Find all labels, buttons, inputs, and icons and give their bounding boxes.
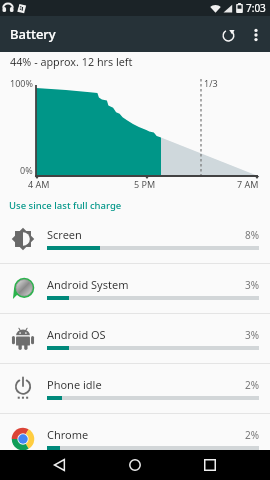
button[interactable]: More options <box>242 21 269 48</box>
staticText: Use since last full charge <box>9 199 122 212</box>
staticText: Battery <box>10 25 56 43</box>
staticText: 100% <box>10 77 33 89</box>
staticText: 3% <box>245 278 260 292</box>
staticText: 44% - approx. 12 hrs left <box>10 54 133 69</box>
staticText: 2% <box>245 428 260 442</box>
staticText: 8% <box>245 228 260 242</box>
staticText: 2% <box>245 378 260 392</box>
staticText: Android System <box>47 277 129 292</box>
button[interactable]: Home <box>117 450 153 480</box>
staticText: Phone idle <box>47 377 102 392</box>
staticText: Chrome <box>47 427 89 442</box>
staticText: 5 PM <box>134 178 156 190</box>
staticText: Screen <box>47 227 82 242</box>
button[interactable]: Phone idle <box>0 364 270 414</box>
button[interactable]: Screen <box>0 214 270 264</box>
button[interactable]: Refresh <box>213 19 244 50</box>
button[interactable]: Android OS <box>0 314 270 364</box>
staticText: 7 AM <box>237 178 259 190</box>
button[interactable]: Chrome <box>0 414 270 464</box>
staticText: Android OS <box>47 327 106 342</box>
staticText: 0% <box>20 164 33 176</box>
staticText: 1/3 <box>204 77 218 89</box>
button[interactable]: Back <box>41 450 77 480</box>
staticText: 3% <box>245 328 260 342</box>
staticText: 4 AM <box>28 178 50 190</box>
button[interactable]: Recents <box>192 450 228 480</box>
staticText: 7:03 <box>246 1 266 15</box>
button[interactable]: Android System <box>0 264 270 314</box>
